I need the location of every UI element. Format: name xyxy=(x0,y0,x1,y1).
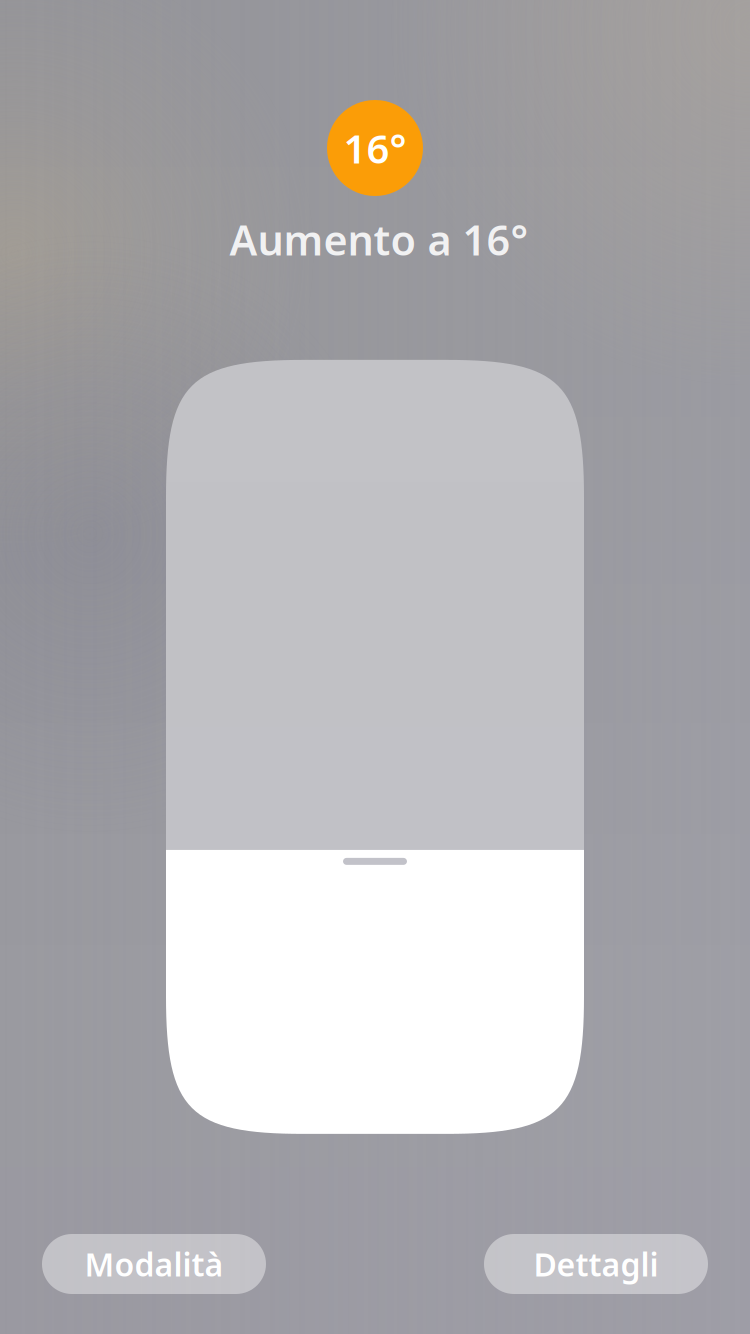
staticText: Modalità xyxy=(84,1243,223,1285)
staticText: Dettagli xyxy=(533,1243,658,1285)
button[interactable]: Temperatura, 16 gradi xyxy=(166,360,584,1134)
staticText: Aumento a 16° xyxy=(229,212,528,267)
button[interactable]: Dettagli xyxy=(484,1234,708,1294)
button[interactable]: Modalità xyxy=(42,1234,266,1294)
staticText: 16° xyxy=(343,121,406,174)
